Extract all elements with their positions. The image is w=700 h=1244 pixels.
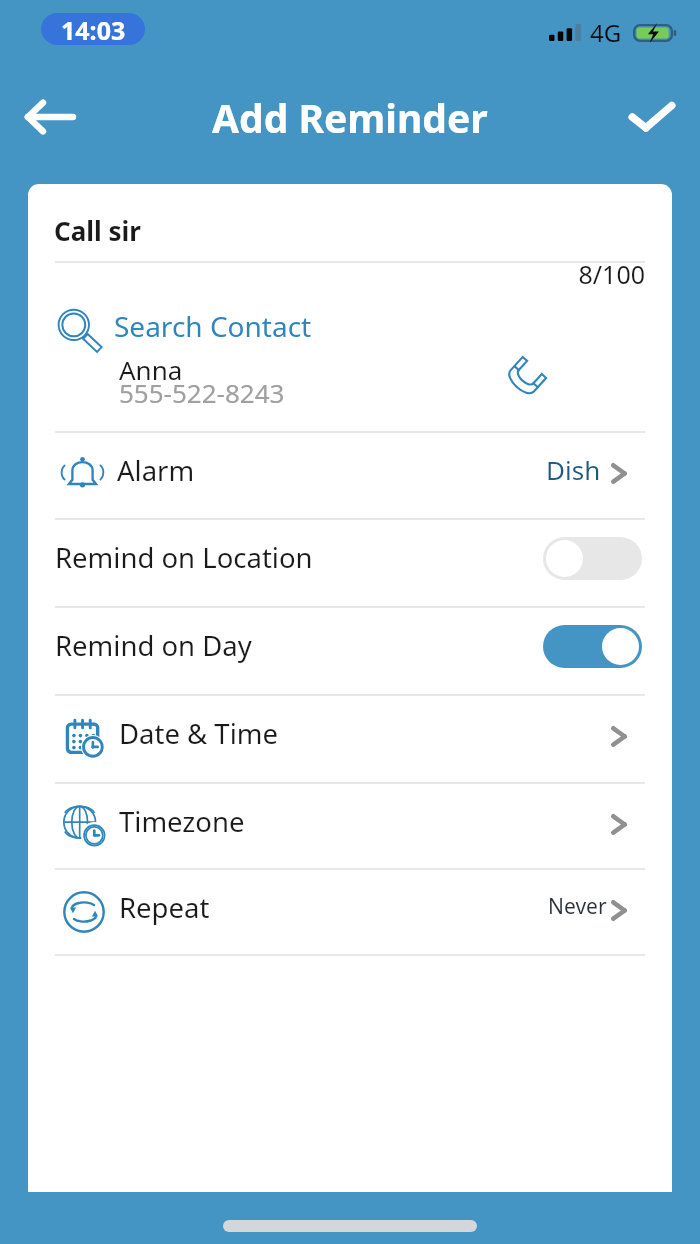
button[interactable]: Remind on Day bbox=[55, 606, 645, 693]
button[interactable]: Alarm bbox=[55, 431, 645, 518]
staticText: Never bbox=[548, 892, 607, 921]
button[interactable]: Search Contact bbox=[55, 298, 357, 354]
staticText: Remind on Day bbox=[55, 627, 252, 664]
button[interactable]: Save bbox=[614, 79, 690, 155]
staticText: Date & Time bbox=[119, 715, 278, 752]
staticText: Timezone bbox=[119, 803, 245, 840]
button[interactable]: Back bbox=[12, 79, 88, 155]
button[interactable]: Date & Time bbox=[55, 694, 645, 781]
staticText: Dish bbox=[546, 452, 601, 487]
staticText: 14:03 bbox=[61, 13, 126, 45]
button[interactable]: Remind on Location bbox=[55, 518, 645, 605]
staticText: Add Reminder bbox=[212, 91, 488, 144]
button[interactable]: Timezone bbox=[55, 782, 645, 869]
staticText: Call sir bbox=[54, 213, 141, 248]
staticText: Anna bbox=[119, 352, 183, 387]
staticText: 555-522-8243 bbox=[119, 375, 285, 410]
staticText: Remind on Location bbox=[55, 539, 313, 576]
staticText: 4G bbox=[590, 16, 622, 49]
staticText: Search Contact bbox=[114, 307, 312, 345]
button[interactable]: Repeat bbox=[55, 868, 645, 955]
staticText: 8/100 bbox=[28, 257, 645, 291]
staticText: Alarm bbox=[117, 452, 195, 489]
button[interactable]: Call bbox=[494, 349, 554, 409]
staticText: Repeat bbox=[119, 889, 210, 926]
